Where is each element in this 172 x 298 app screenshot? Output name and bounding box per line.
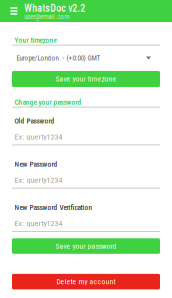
staticText: New Password Verification [14, 203, 92, 212]
button[interactable]: Ex: querty1234 [12, 219, 160, 232]
button[interactable]: Open navigation menu [3, 0, 24, 22]
button[interactable]: Ex: querty1234 [12, 175, 160, 189]
staticText: Ex: querty1234 [14, 219, 62, 228]
staticText: Delete my account [56, 277, 115, 286]
staticText: Ex: querty1234 [14, 175, 62, 185]
button[interactable]: Save your timezone [12, 71, 160, 87]
staticText: Ex: querty1234 [14, 132, 62, 141]
staticText: Old Password [14, 117, 54, 125]
staticText: user@email.com [24, 12, 69, 21]
staticText: Save your password [55, 242, 116, 250]
staticText: New Password [14, 160, 57, 169]
staticText: Europe/London - (+0:00) GMT [16, 54, 100, 62]
staticText: Change your password [14, 98, 81, 107]
staticText: WhatsDoc v2.2 [24, 2, 85, 14]
button[interactable]: Delete my account [12, 274, 160, 289]
button[interactable]: Save your password [12, 238, 160, 254]
button[interactable]: Ex: querty1234 [12, 132, 160, 145]
staticText: Save your timezone [55, 74, 116, 83]
button[interactable]: Europe/London - (+0:00) GMT [12, 53, 160, 62]
staticText: Your timezone [14, 36, 56, 45]
